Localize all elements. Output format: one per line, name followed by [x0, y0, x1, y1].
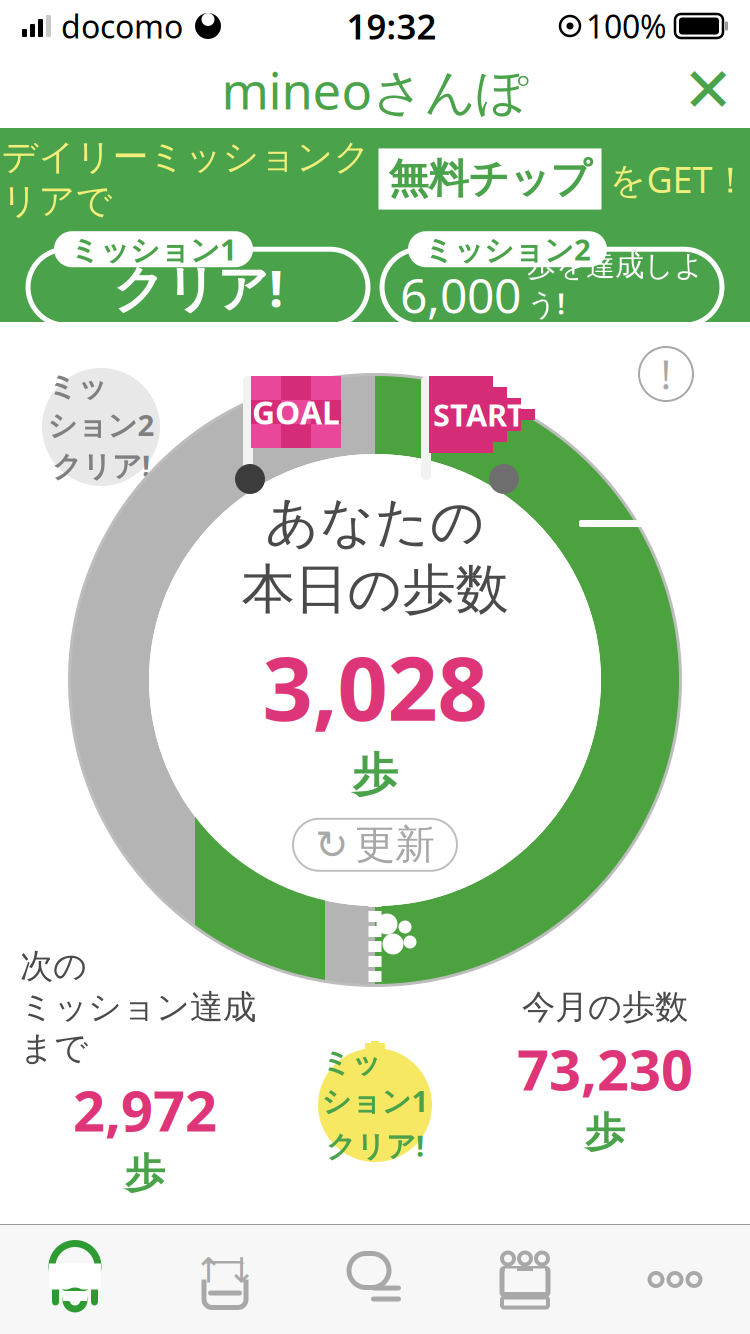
staticText: 歩 [585, 1108, 625, 1157]
button[interactable]: クリア! [28, 231, 368, 325]
staticText: クリア! [52, 446, 150, 485]
button[interactable]: ランキング [450, 1225, 600, 1333]
staticText: 歩を達成しよう! [527, 248, 704, 323]
staticText: 本日の歩数 [241, 557, 508, 622]
button[interactable]: 説明 [636, 344, 696, 404]
button[interactable]: データ [150, 1225, 300, 1333]
staticText: クリア! [113, 254, 283, 321]
button[interactable]: ホーム [0, 1225, 150, 1333]
staticText: をGET！ [609, 155, 748, 203]
staticText: ミッション1 [70, 230, 237, 269]
staticText: 19:32 [346, 3, 436, 49]
button[interactable]: その他 [600, 1225, 750, 1333]
staticText: GOAL [252, 391, 340, 433]
staticText: ↻ [315, 822, 349, 867]
button[interactable]: 閉じる [666, 52, 750, 128]
staticText: 3,028 [262, 628, 487, 745]
button[interactable]: ↻ [293, 819, 457, 871]
staticText: ミッション1 [321, 1045, 428, 1120]
staticText: ミッション2 [47, 369, 154, 444]
staticText: クリア! [326, 1126, 424, 1165]
staticText: 無料チップ [388, 154, 591, 203]
staticText: 更新 [355, 820, 435, 869]
staticText: docomo [61, 5, 183, 47]
staticText: START [433, 394, 525, 435]
staticText: デイリーミッションクリアで [1, 135, 370, 223]
staticText: 次の [20, 946, 87, 987]
button[interactable]: 6,000 [382, 231, 722, 325]
staticText: 歩 [352, 747, 397, 803]
staticText: 6,000 [400, 263, 521, 327]
staticText: ! [660, 347, 671, 400]
button[interactable]: チャット [300, 1225, 450, 1333]
staticText: ミッション達成まで [20, 987, 256, 1068]
staticText: 73,230 [517, 1032, 693, 1106]
staticText: ↑ [194, 1251, 223, 1290]
staticText: あなたの [265, 489, 485, 555]
staticText: mineoさんぽ [221, 56, 528, 124]
staticText: ミッション2 [424, 230, 591, 269]
staticText: 2,972 [73, 1072, 217, 1147]
staticText: 100% [586, 5, 667, 47]
staticText: 歩 [125, 1149, 165, 1198]
staticText: 今月の歩数 [522, 987, 688, 1027]
staticText: ↓ [227, 1251, 256, 1290]
staticText: ✕ [682, 55, 733, 125]
